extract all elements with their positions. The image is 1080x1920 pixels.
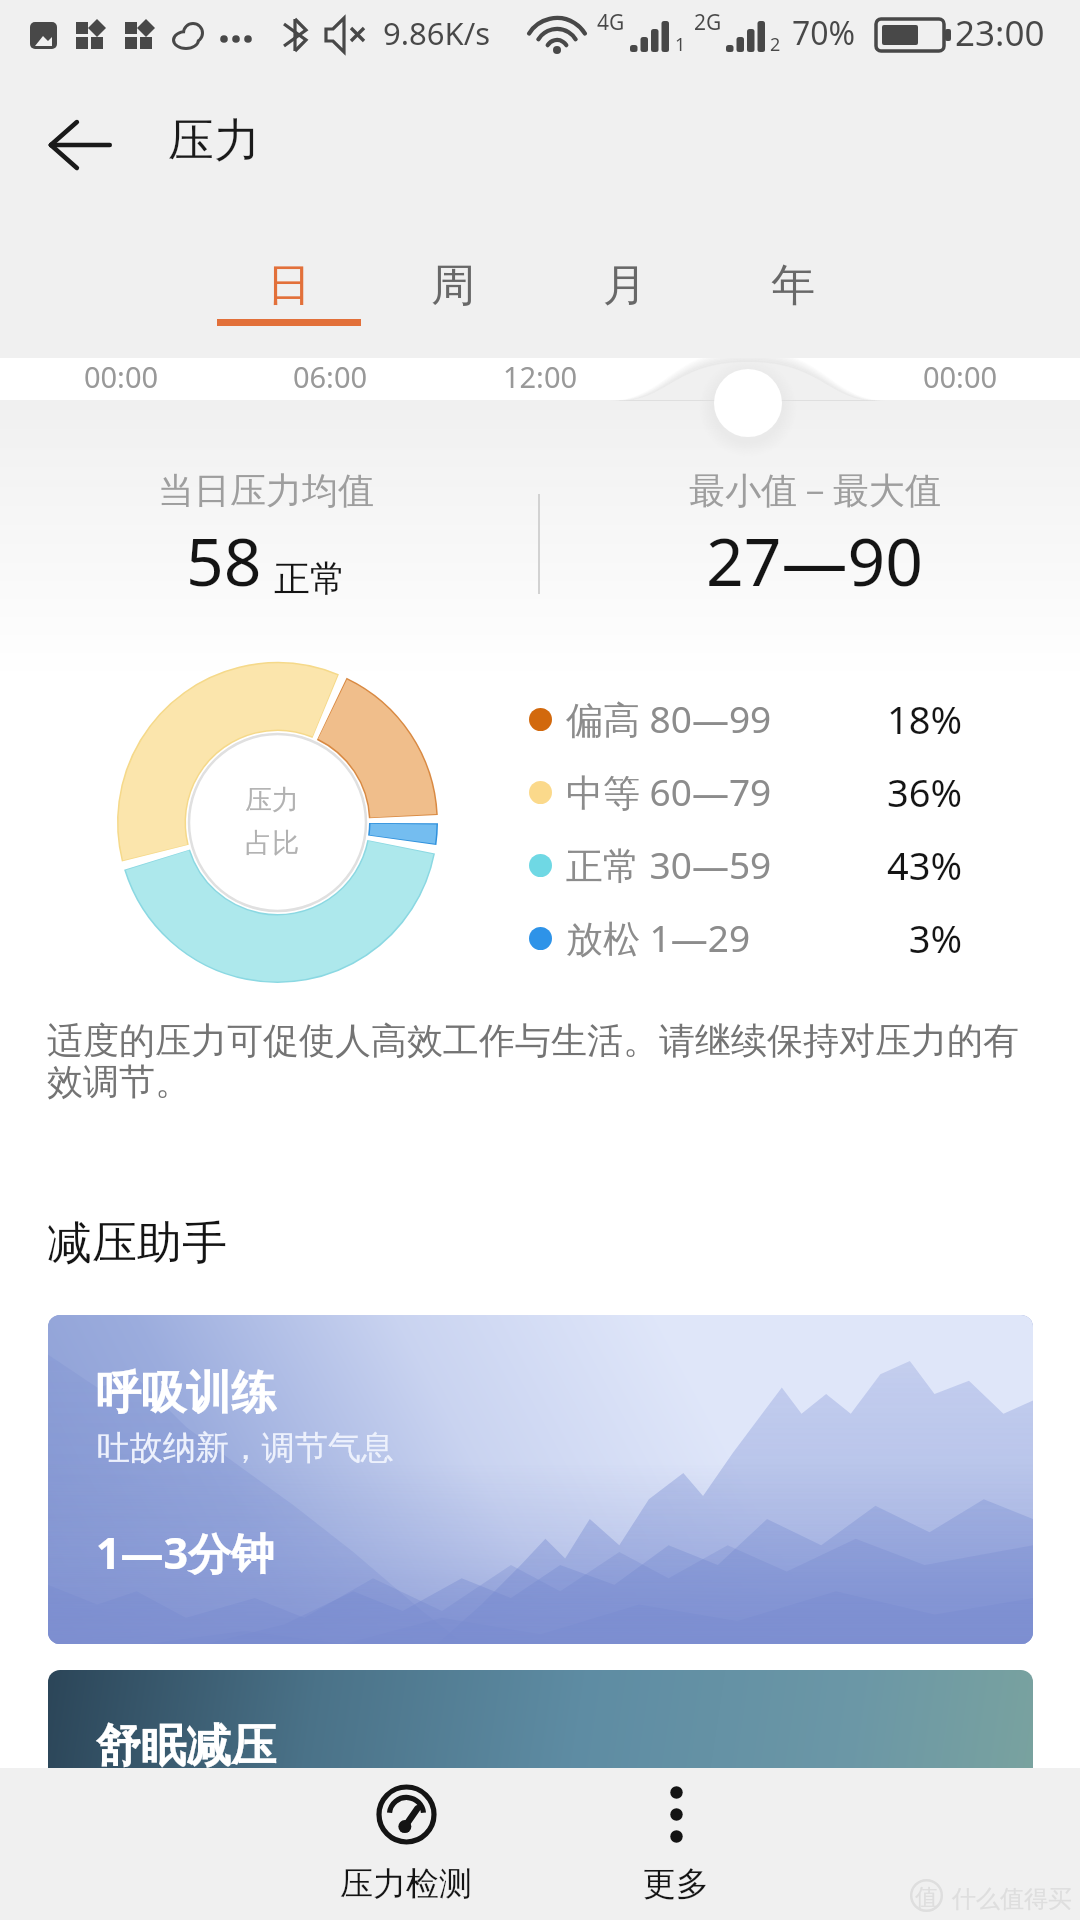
staticText: 70% bbox=[792, 11, 856, 55]
button[interactable]: 周 bbox=[369, 232, 537, 342]
staticText: 呼吸训练 bbox=[96, 1365, 276, 1422]
staticText: 18% bbox=[801, 693, 962, 745]
staticText: 06:00 bbox=[270, 357, 390, 396]
staticText: 吐故纳新，调节气息 bbox=[97, 1427, 394, 1469]
button[interactable]: 更多 bbox=[576, 1768, 776, 1920]
staticText: 23:00 bbox=[955, 9, 1045, 57]
staticText: 58 bbox=[186, 515, 262, 605]
button[interactable]: 压力检测 bbox=[306, 1768, 506, 1920]
staticText: 3% bbox=[801, 912, 962, 964]
staticText: 更多 bbox=[643, 1863, 709, 1905]
staticText: 效调节。 bbox=[47, 1059, 191, 1104]
button[interactable]: Back bbox=[30, 95, 130, 195]
staticText: 月 bbox=[603, 258, 647, 313]
button[interactable]: 舒眠减压 bbox=[48, 1670, 1033, 1920]
staticText: 占比 bbox=[245, 826, 299, 860]
staticText: 中等 60—79 bbox=[566, 766, 772, 817]
staticText: 压力 bbox=[245, 783, 299, 817]
staticText: 周 bbox=[431, 258, 475, 313]
staticText: 偏高 80—99 bbox=[566, 693, 772, 744]
staticText: 4G bbox=[597, 8, 625, 37]
staticText: 43% bbox=[801, 839, 962, 891]
staticText: 减压助手 bbox=[47, 1215, 227, 1272]
staticText: 最小值－最大值 bbox=[689, 468, 941, 513]
staticText: 年 bbox=[771, 258, 815, 313]
staticText: 36% bbox=[801, 766, 962, 818]
staticText: 00:00 bbox=[900, 357, 1020, 396]
staticText: 12:00 bbox=[480, 357, 600, 396]
staticText: 舒眠减压 bbox=[96, 1718, 276, 1775]
staticText: 当日压力均值 bbox=[158, 468, 374, 513]
button[interactable]: 月 bbox=[541, 232, 709, 342]
staticText: 放松 1—29 bbox=[566, 912, 751, 963]
staticText: 日 bbox=[267, 258, 311, 313]
staticText: 压力 bbox=[168, 112, 260, 170]
staticText: 27—90 bbox=[706, 515, 924, 605]
staticText: 9.86K/s bbox=[383, 12, 491, 54]
staticText: 00:00 bbox=[61, 357, 181, 396]
button[interactable]: 日 bbox=[205, 232, 373, 342]
staticText: 正常 30—59 bbox=[566, 839, 772, 890]
staticText: 2 bbox=[770, 32, 781, 57]
staticText: 1—3分钟 bbox=[96, 1523, 275, 1582]
staticText: 压力检测 bbox=[340, 1863, 472, 1905]
staticText: 2G bbox=[694, 8, 722, 37]
button[interactable]: 呼吸训练 bbox=[48, 1315, 1033, 1644]
staticText: 正常 bbox=[274, 556, 346, 601]
button[interactable]: 年 bbox=[709, 232, 877, 342]
staticText: 适度的压力可促使人高效工作与生活。请继续保持对压力的有 bbox=[47, 1018, 1019, 1063]
staticText: 1 bbox=[675, 32, 686, 57]
staticText: 值 bbox=[915, 1883, 938, 1912]
staticText: 什么值得买 bbox=[952, 1884, 1072, 1914]
